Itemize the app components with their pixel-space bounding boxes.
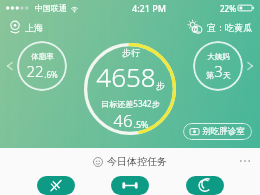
staticText: 目标还差5342步 <box>101 98 160 109</box>
button[interactable]: 别吃胖诊室 <box>183 123 252 140</box>
button[interactable]: 今日体控任务 <box>93 155 167 168</box>
button[interactable]: 大姨妈 <box>193 41 243 91</box>
staticText: 天 <box>223 70 231 80</box>
staticText: .5% <box>133 118 149 130</box>
staticText: 体脂率 <box>31 52 54 61</box>
staticText: 中国联通 <box>35 3 67 13</box>
staticText: 别吃胖诊室 <box>202 126 245 137</box>
button[interactable]: 步行 <box>83 42 177 136</box>
button[interactable]: Exercise task <box>111 176 149 195</box>
staticText: 今日体控任务 <box>107 155 167 168</box>
button[interactable]: 上海 <box>8 20 43 34</box>
staticText: 22 <box>26 61 44 81</box>
staticText: 步 <box>156 80 165 91</box>
other: Next <box>244 60 256 72</box>
staticText: 上海 <box>25 22 43 33</box>
staticText: 大姨妈 <box>207 52 230 61</box>
staticText: .6% <box>44 69 58 80</box>
staticText: 46 <box>113 109 133 132</box>
button[interactable]: More <box>238 156 252 166</box>
staticText: 3 <box>214 61 223 81</box>
button[interactable]: 体脂率 <box>17 41 67 91</box>
button[interactable]: 宜：吃黄瓜 <box>188 20 252 34</box>
button[interactable]: Sleep task <box>186 176 224 195</box>
staticText: 4:21 PM <box>132 2 166 14</box>
staticText: 第 <box>206 70 214 80</box>
other: Previous <box>4 60 16 72</box>
staticText: 22% <box>220 3 236 14</box>
button[interactable]: Diet task <box>37 176 75 195</box>
staticText: 4658 <box>96 59 156 94</box>
staticText: 宜：吃黄瓜 <box>207 22 252 33</box>
staticText: 步行 <box>122 47 140 58</box>
